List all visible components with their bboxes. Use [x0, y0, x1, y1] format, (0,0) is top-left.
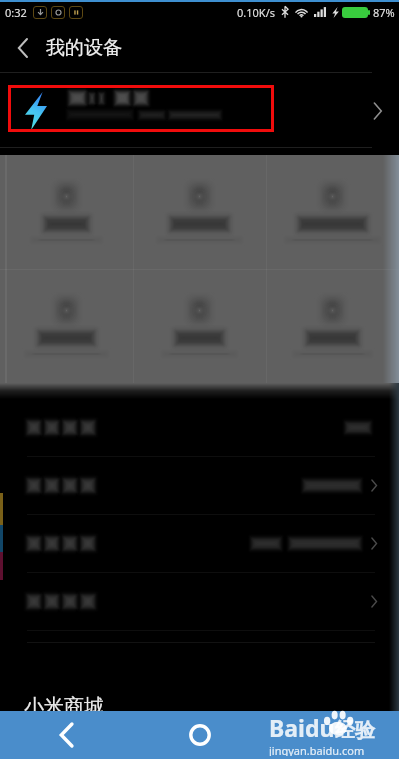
button[interactable]: Back	[0, 25, 46, 71]
staticText: 0:32	[5, 5, 27, 20]
staticText: 87%	[373, 5, 395, 20]
button[interactable]	[0, 155, 133, 269]
staticText: 小米商城	[24, 694, 104, 719]
button[interactable]	[0, 457, 399, 514]
staticText: 0.10K/s	[237, 5, 275, 20]
button[interactable]	[0, 399, 399, 456]
button[interactable]	[0, 73, 399, 148]
staticText: 经验	[335, 718, 375, 743]
staticText: Baidu	[269, 712, 335, 743]
button[interactable]: Home	[133, 711, 266, 759]
button[interactable]	[0, 573, 399, 630]
staticText: jingyan.baidu.com	[269, 743, 365, 756]
button[interactable]: Back	[0, 711, 133, 759]
button[interactable]: Recents	[266, 711, 399, 759]
button[interactable]	[266, 155, 399, 269]
button[interactable]	[0, 515, 399, 572]
button[interactable]	[0, 269, 133, 383]
staticText: 我的设备	[46, 36, 122, 60]
button[interactable]	[133, 155, 266, 269]
button[interactable]	[133, 269, 266, 383]
button[interactable]	[266, 269, 399, 383]
